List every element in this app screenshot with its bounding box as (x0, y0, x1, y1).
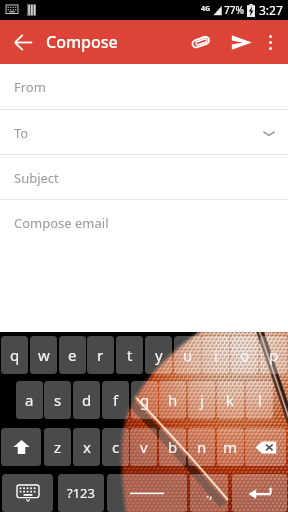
staticText: 3:27 (259, 2, 283, 18)
button[interactable]: w (30, 336, 57, 374)
staticText: o (240, 345, 250, 365)
button[interactable]: i (202, 336, 229, 374)
staticText: c (112, 437, 120, 457)
staticText: To (14, 124, 29, 142)
staticText: r (97, 345, 104, 365)
button[interactable]: o (231, 336, 258, 374)
staticText: i (214, 345, 218, 365)
staticText: ?123 (67, 484, 95, 502)
staticText: j (200, 390, 204, 410)
button[interactable]: Shift (1, 428, 41, 466)
button[interactable]: m (217, 428, 244, 466)
staticText: p (269, 345, 279, 365)
staticText: q (10, 345, 20, 365)
staticText: t (127, 345, 133, 365)
button[interactable]: p (260, 336, 287, 374)
staticText: e (68, 345, 77, 365)
button[interactable]: h (159, 381, 186, 419)
button[interactable]: e (59, 336, 86, 374)
button[interactable]: Attach file (179, 20, 223, 64)
staticText: Subject (14, 169, 59, 187)
button[interactable]: Space (107, 474, 187, 512)
button[interactable]: d (73, 381, 100, 419)
staticText: k (226, 390, 235, 410)
button[interactable]: u (174, 336, 201, 374)
staticText: z (54, 437, 62, 457)
button[interactable]: v (130, 428, 157, 466)
button[interactable]: k (217, 381, 244, 419)
button[interactable]: Back (0, 20, 46, 64)
button[interactable]: More options (257, 20, 283, 64)
button[interactable]: s (44, 381, 71, 419)
staticText: u (183, 345, 193, 365)
button[interactable]: ?123 (58, 474, 104, 512)
button[interactable]: y (145, 336, 172, 374)
button[interactable]: z (44, 428, 71, 466)
button[interactable]: l (246, 381, 273, 419)
staticText: g (140, 390, 150, 410)
staticText: y (155, 345, 163, 365)
staticText: x (83, 437, 91, 457)
staticText: s (54, 390, 62, 410)
staticText: 4G (201, 4, 211, 14)
button[interactable]: b (159, 428, 186, 466)
button[interactable]: ., (190, 474, 228, 512)
staticText: m (223, 437, 238, 457)
button[interactable]: f (102, 381, 129, 419)
button[interactable]: From (0, 64, 288, 110)
button[interactable]: x (73, 428, 100, 466)
button[interactable]: To (0, 110, 288, 155)
staticText: l (258, 390, 262, 410)
button[interactable]: r (87, 336, 114, 374)
staticText: f (113, 390, 119, 410)
staticText: v (140, 437, 148, 457)
button[interactable]: Change keyboard (2, 474, 53, 512)
staticText: Compose email (14, 214, 109, 232)
button[interactable]: Subject (0, 155, 288, 200)
staticText: h (168, 390, 178, 410)
button[interactable]: Enter (232, 474, 287, 512)
button[interactable]: q (1, 336, 28, 374)
staticText: From (14, 78, 46, 96)
staticText: a (25, 390, 34, 410)
button[interactable]: Backspace (245, 428, 286, 466)
button[interactable]: n (188, 428, 215, 466)
staticText: Compose (46, 31, 118, 53)
staticText: ., (206, 485, 213, 501)
button[interactable]: a (16, 381, 43, 419)
button[interactable]: t (116, 336, 143, 374)
button[interactable]: g (131, 381, 158, 419)
button[interactable]: j (188, 381, 215, 419)
staticText: n (197, 437, 207, 457)
button[interactable]: Compose email (0, 200, 288, 245)
staticText: w (38, 345, 50, 365)
staticText: 77% (224, 3, 244, 17)
button[interactable]: Send (222, 20, 260, 64)
staticText: d (82, 390, 92, 410)
button[interactable]: c (102, 428, 129, 466)
staticText: b (168, 437, 178, 457)
